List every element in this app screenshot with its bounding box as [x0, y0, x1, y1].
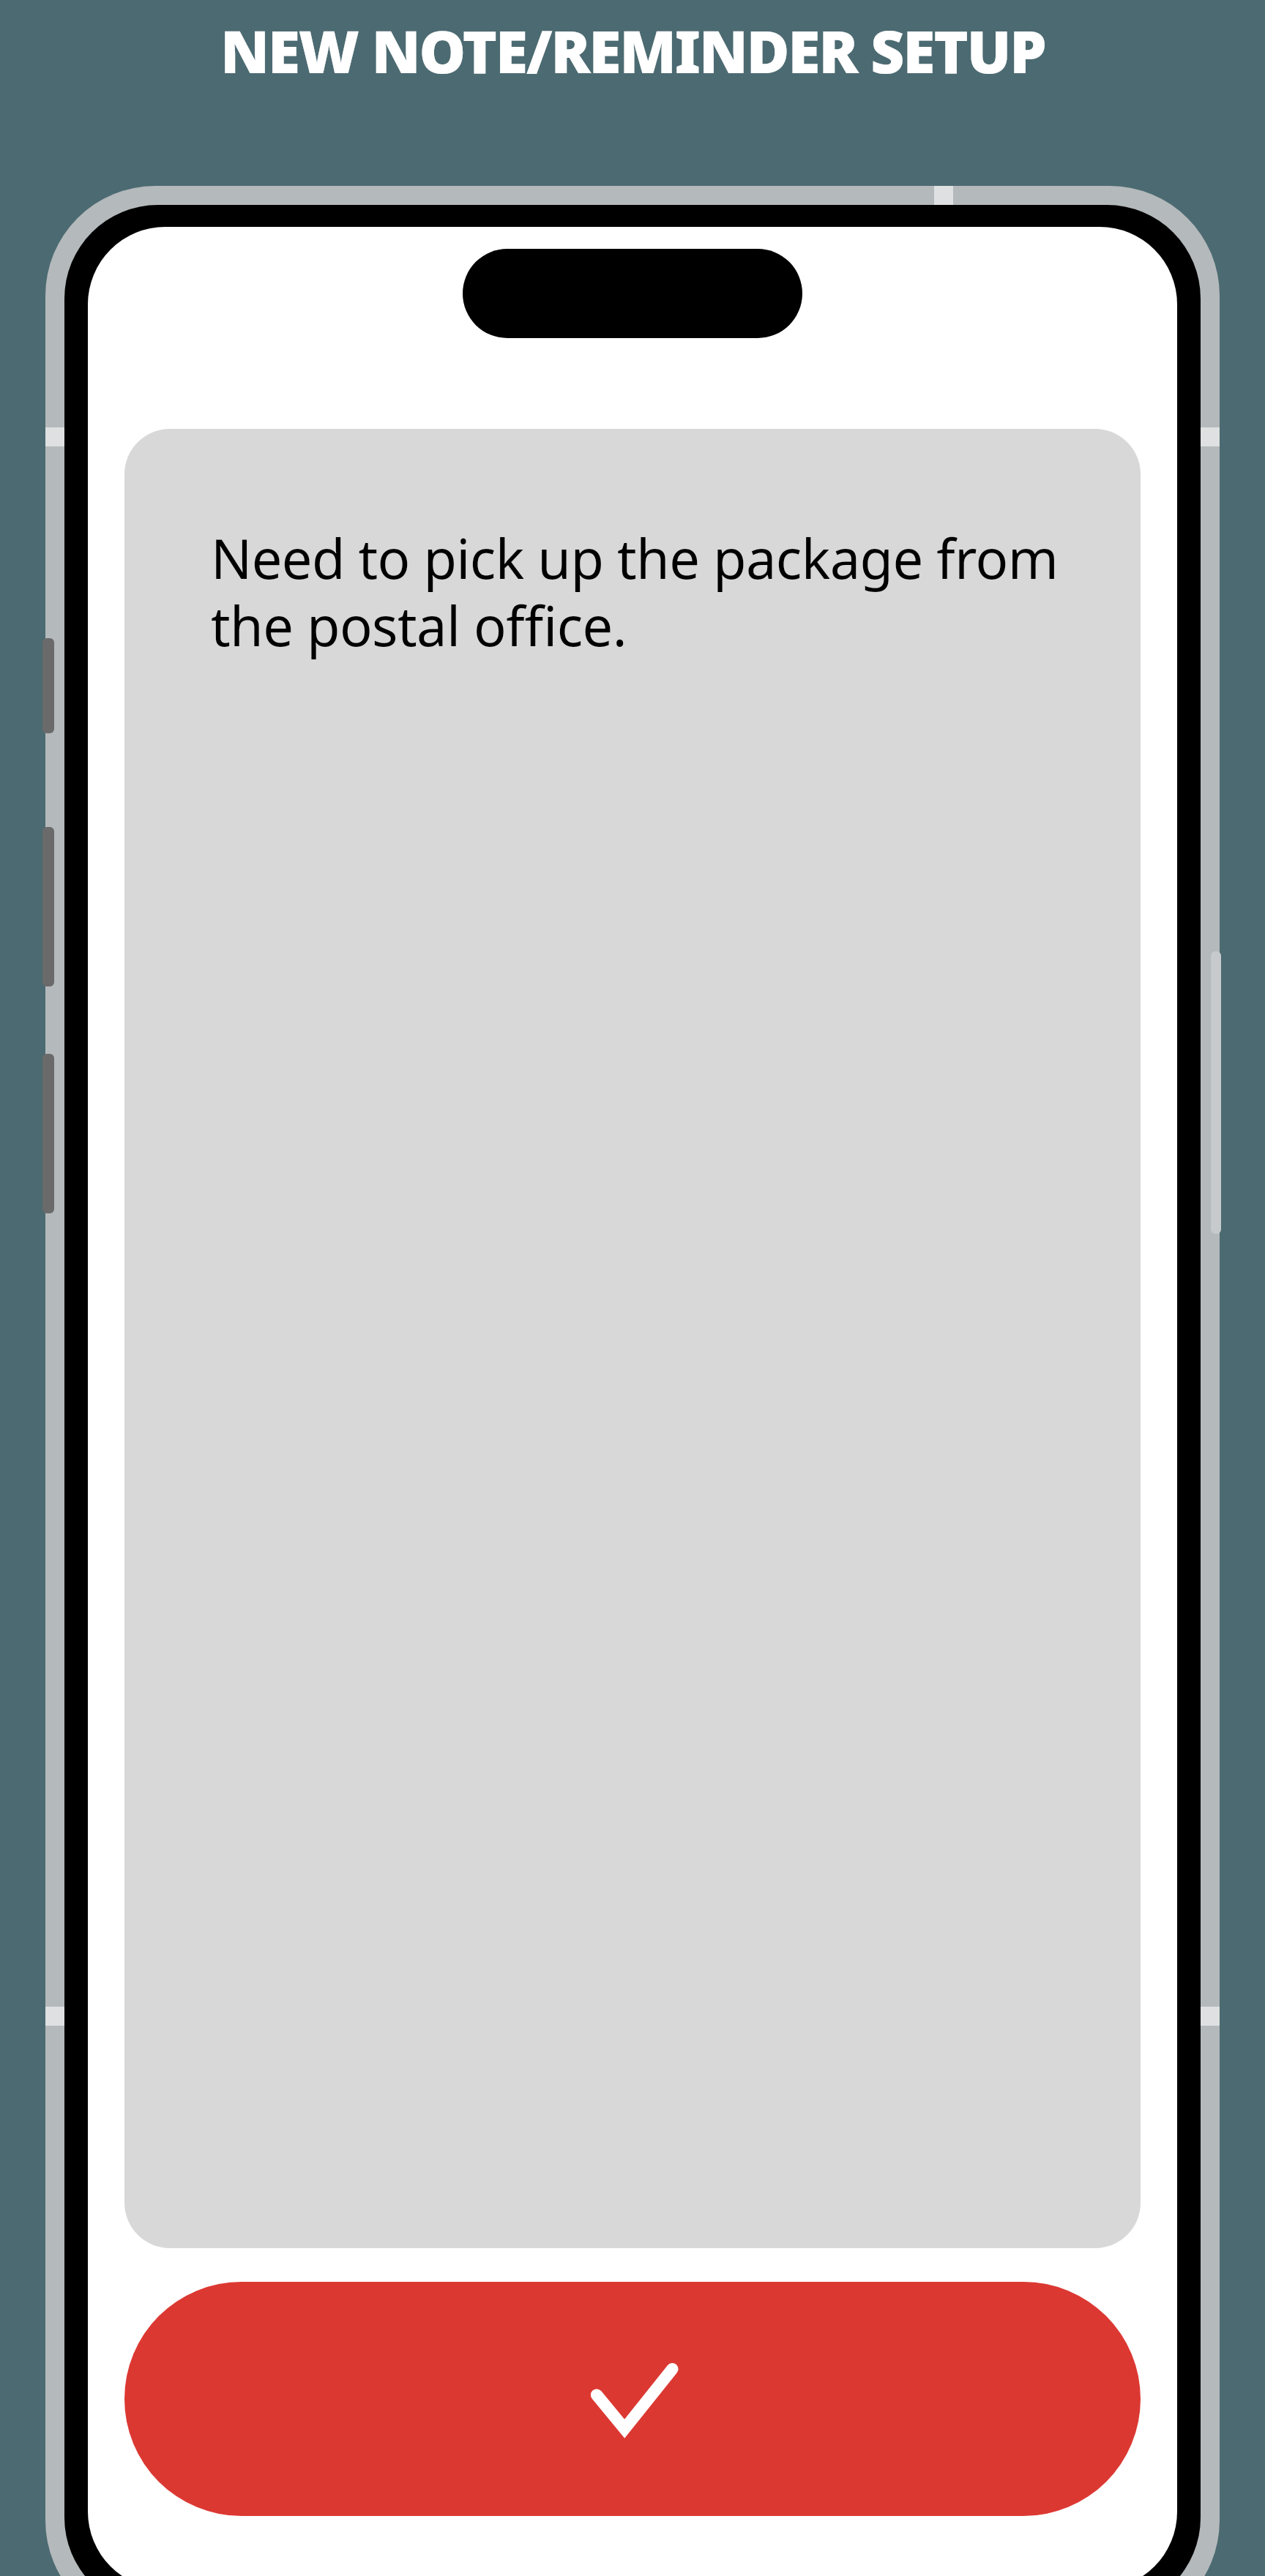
staticText: Need to pick up the package from the pos…	[211, 521, 1067, 662]
button[interactable]: Save note	[124, 2282, 1141, 2516]
button[interactable]: Power	[1211, 951, 1221, 1234]
button[interactable]: Volume up	[42, 827, 54, 986]
button[interactable]: Volume down	[42, 1054, 54, 1213]
button[interactable]: Silence switch	[42, 638, 54, 733]
button[interactable]: Need to pick up the package from the pos…	[124, 429, 1141, 2248]
staticText: NEW NOTE/REMINDER SETUP	[220, 10, 1045, 90]
other: Front camera and sensors	[463, 249, 802, 338]
